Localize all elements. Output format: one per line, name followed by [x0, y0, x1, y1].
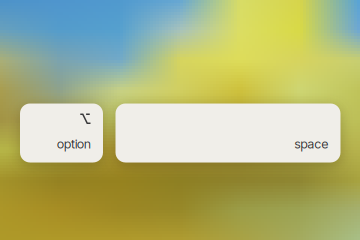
staticText: option [57, 136, 91, 152]
staticText: space [294, 136, 328, 152]
button[interactable]: space [115, 103, 340, 162]
button[interactable]: option [20, 103, 103, 162]
